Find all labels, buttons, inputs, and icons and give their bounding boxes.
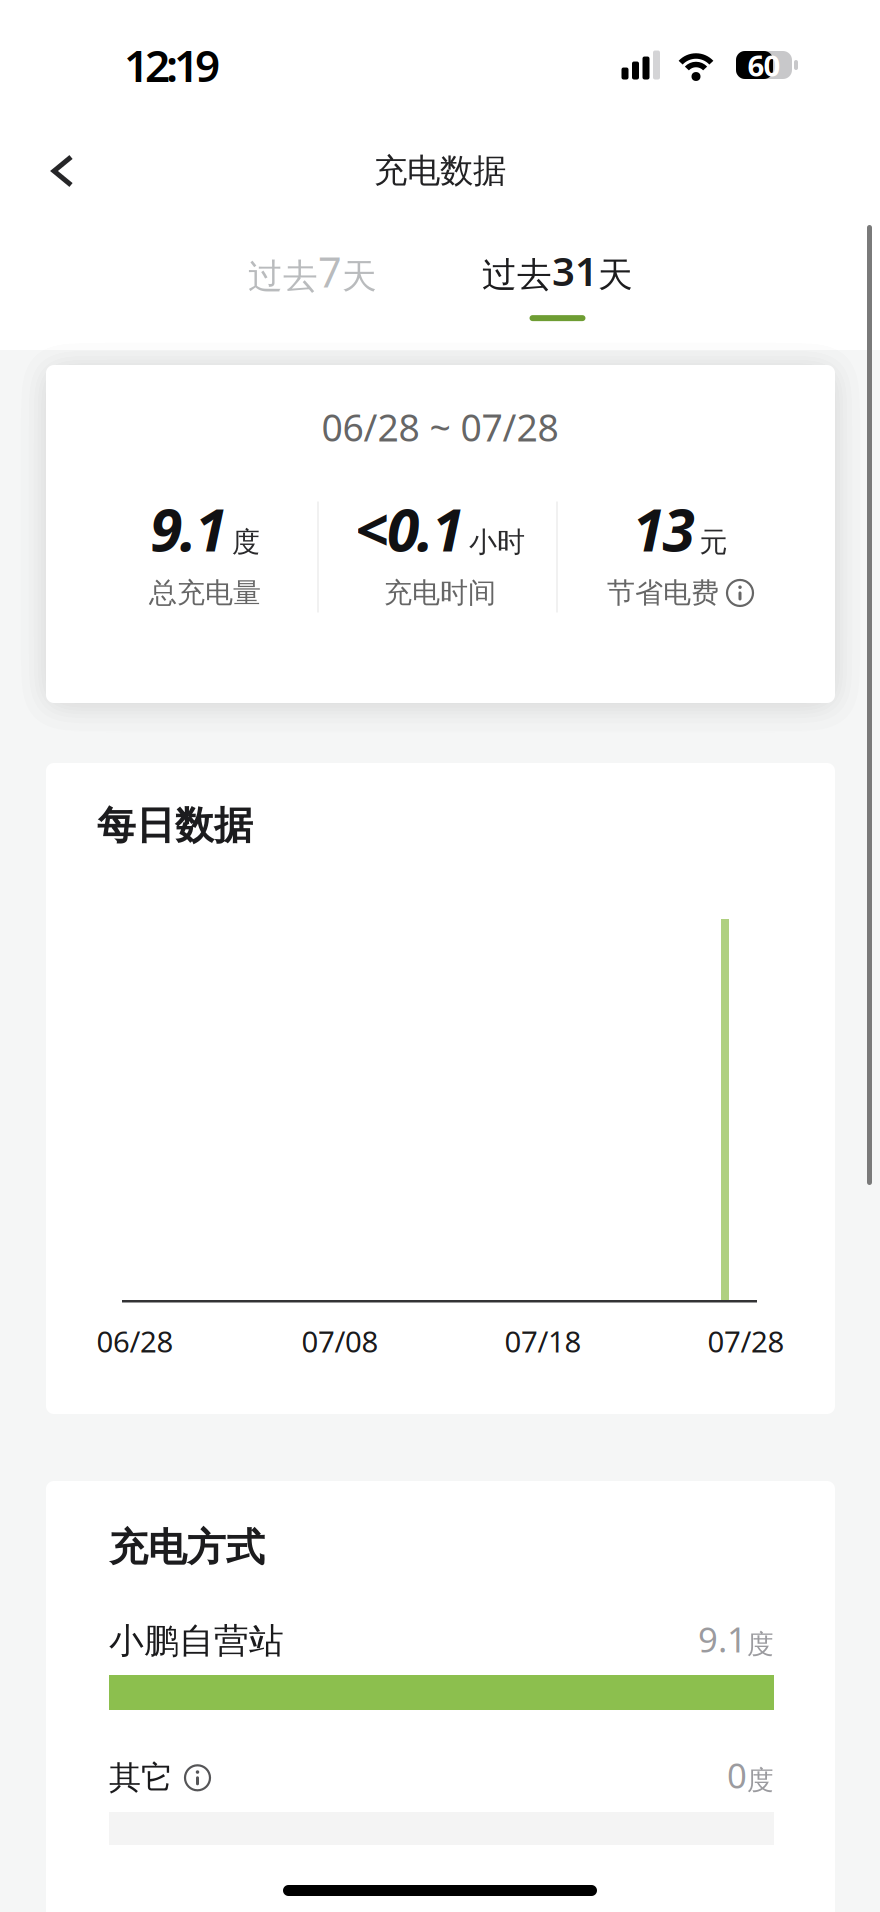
staticText: 节省电费	[607, 576, 719, 610]
staticText: <0.1	[355, 490, 464, 568]
button[interactable]: 节省电费说明	[727, 580, 753, 606]
button[interactable]: Back	[0, 134, 104, 207]
staticText: 07/18	[504, 1321, 581, 1360]
button[interactable]: 过去31天	[482, 212, 633, 321]
staticText: 12:19	[124, 36, 220, 94]
staticText: 07/28	[707, 1321, 784, 1360]
staticText: 60	[747, 45, 780, 84]
staticText: 总充电量	[149, 576, 261, 610]
staticText: 充电数据	[374, 150, 506, 191]
staticText: 小时	[469, 525, 525, 559]
staticText: 其它	[109, 1758, 173, 1797]
staticText: 06/28	[96, 1321, 173, 1360]
staticText: 9.1度	[698, 1616, 774, 1662]
staticText: 06/28 ~ 07/28	[321, 402, 558, 452]
staticText: 充电方式	[109, 1524, 265, 1571]
staticText: 元	[699, 525, 727, 559]
button[interactable]: 其它说明	[185, 1765, 210, 1790]
staticText: 小鹏自营站	[109, 1620, 284, 1662]
button[interactable]: 过去7天	[248, 212, 377, 329]
staticText: 每日数据	[97, 802, 253, 849]
staticText: 13	[632, 490, 694, 568]
staticText: 过去7天	[248, 244, 377, 299]
staticText: 07/08	[301, 1321, 378, 1360]
staticText: 充电时间	[384, 576, 496, 610]
staticText: 0度	[727, 1752, 774, 1798]
staticText: 度	[232, 525, 260, 559]
staticText: 9.1	[150, 490, 227, 568]
staticText: 过去31天	[482, 244, 633, 297]
